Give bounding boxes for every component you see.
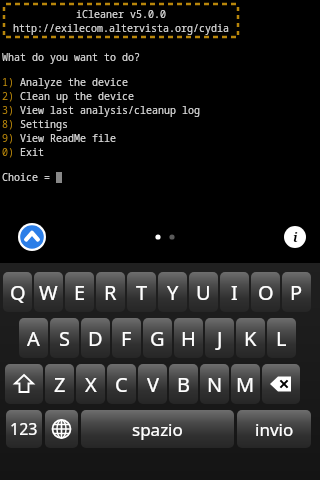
staticText: S bbox=[59, 325, 70, 352]
button[interactable]: spazio bbox=[81, 410, 234, 448]
staticText: G bbox=[150, 325, 165, 352]
staticText: A bbox=[27, 325, 40, 352]
button[interactable]: 1) Analyze the device bbox=[2, 75, 320, 89]
button[interactable]: J bbox=[205, 318, 234, 358]
staticText: 1) Analyze the device bbox=[2, 75, 128, 89]
staticText: K bbox=[244, 325, 257, 352]
button[interactable]: Shift bbox=[5, 364, 43, 404]
staticText: What do you want to do? bbox=[2, 50, 140, 64]
button[interactable]: Z bbox=[45, 364, 74, 404]
staticText: M bbox=[236, 371, 255, 398]
staticText: W bbox=[39, 279, 58, 306]
staticText: 3) View last analysis/cleanup log bbox=[2, 103, 200, 117]
button[interactable]: L bbox=[267, 318, 296, 358]
staticText: R bbox=[104, 279, 117, 306]
button[interactable]: 8) Settings bbox=[2, 117, 320, 131]
staticText: Q bbox=[10, 279, 26, 306]
staticText: 123 bbox=[10, 418, 38, 440]
button[interactable]: Y bbox=[158, 272, 187, 312]
button[interactable]: K bbox=[236, 318, 265, 358]
staticText: P bbox=[290, 279, 303, 306]
button[interactable]: Backspace bbox=[262, 364, 300, 404]
button[interactable]: Q bbox=[3, 272, 32, 312]
button[interactable]: 3) View last analysis/cleanup log bbox=[2, 103, 320, 117]
staticText: 0) Exit bbox=[2, 145, 44, 159]
button[interactable]: I bbox=[220, 272, 249, 312]
button[interactable]: invio bbox=[237, 410, 311, 448]
button[interactable]: 2) Clean up the device bbox=[2, 89, 320, 103]
button[interactable]: X bbox=[76, 364, 105, 404]
button[interactable]: Info bbox=[284, 226, 306, 248]
staticText: T bbox=[136, 279, 148, 306]
staticText: U bbox=[196, 279, 211, 306]
button[interactable]: N bbox=[200, 364, 229, 404]
button[interactable]: G bbox=[143, 318, 172, 358]
staticText: N bbox=[207, 371, 223, 398]
button[interactable]: Scroll up bbox=[18, 223, 46, 251]
button[interactable]: W bbox=[34, 272, 63, 312]
button[interactable]: T bbox=[127, 272, 156, 312]
staticText: C bbox=[115, 371, 128, 398]
staticText: L bbox=[276, 325, 287, 352]
button[interactable]: S bbox=[50, 318, 79, 358]
staticText: Choice = bbox=[2, 170, 56, 184]
staticText: spazio bbox=[132, 418, 183, 441]
button[interactable]: O bbox=[251, 272, 280, 312]
button[interactable]: 0) Exit bbox=[2, 145, 320, 159]
staticText: invio bbox=[255, 418, 294, 441]
staticText: D bbox=[88, 325, 103, 352]
button[interactable]: M bbox=[231, 364, 260, 404]
staticText: 8) Settings bbox=[2, 117, 68, 131]
button[interactable]: U bbox=[189, 272, 218, 312]
staticText: Z bbox=[54, 371, 66, 398]
staticText: V bbox=[147, 371, 159, 398]
staticText: H bbox=[181, 325, 196, 352]
button[interactable]: V bbox=[138, 364, 167, 404]
button[interactable]: F bbox=[112, 318, 141, 358]
button[interactable]: B bbox=[169, 364, 198, 404]
staticText: http://exilecom.altervista.org/cydia bbox=[13, 21, 229, 35]
staticText: J bbox=[217, 325, 223, 352]
staticText: Y bbox=[167, 279, 179, 306]
staticText: i bbox=[293, 228, 298, 246]
staticText: E bbox=[74, 279, 86, 306]
staticText: X bbox=[85, 371, 97, 398]
button[interactable]: 9) View ReadMe file bbox=[2, 131, 320, 145]
button[interactable]: H bbox=[174, 318, 203, 358]
button[interactable]: E bbox=[65, 272, 94, 312]
staticText: O bbox=[258, 279, 274, 306]
button[interactable]: C bbox=[107, 364, 136, 404]
button[interactable]: R bbox=[96, 272, 125, 312]
staticText: B bbox=[177, 371, 190, 398]
button[interactable]: P bbox=[282, 272, 311, 312]
staticText: 9) View ReadMe file bbox=[2, 131, 116, 145]
staticText: 2) Clean up the device bbox=[2, 89, 134, 103]
staticText: iCleaner v5.0.0 bbox=[76, 7, 166, 21]
button[interactable]: D bbox=[81, 318, 110, 358]
staticText: F bbox=[121, 325, 132, 352]
button[interactable]: 123 bbox=[6, 410, 42, 448]
button[interactable]: A bbox=[19, 318, 48, 358]
button[interactable]: Change keyboard bbox=[45, 410, 78, 448]
staticText: I bbox=[231, 279, 238, 306]
